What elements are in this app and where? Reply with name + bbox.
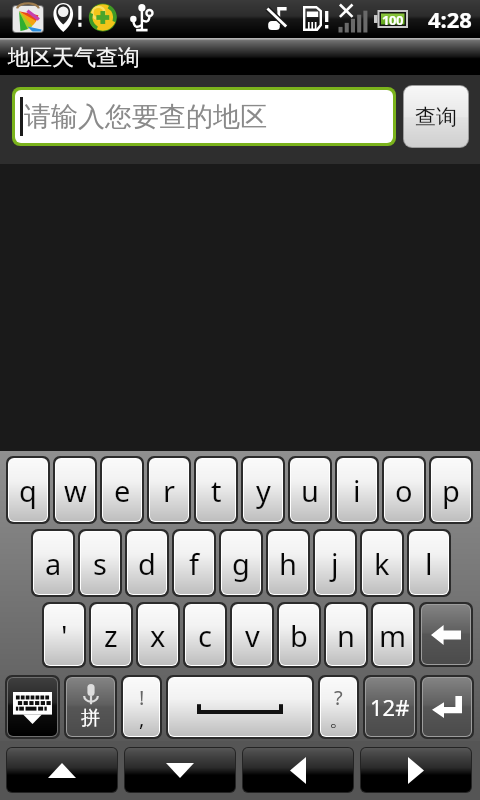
button[interactable]: 查询 (404, 86, 468, 147)
button[interactable]: Down (125, 748, 235, 792)
button[interactable]: g (222, 532, 260, 594)
button[interactable]: z (92, 605, 130, 665)
staticText: b (290, 616, 308, 655)
button[interactable]: j (316, 532, 354, 594)
button[interactable]: ' (45, 605, 83, 665)
button[interactable]: x (139, 605, 177, 665)
staticText: 查询 (415, 104, 457, 130)
staticText: ? (334, 684, 343, 711)
staticText: 100 (382, 11, 403, 28)
staticText: , (139, 705, 145, 732)
staticText: 。 (329, 707, 349, 732)
button[interactable]: Up (7, 748, 117, 792)
staticText: g (232, 544, 250, 583)
staticText: ! (139, 684, 145, 711)
button[interactable]: Left (243, 748, 353, 792)
staticText: i (353, 471, 361, 510)
staticText: h (279, 544, 297, 583)
staticText: k (374, 544, 390, 583)
button[interactable]: d (128, 532, 166, 594)
staticText: 4:28 (428, 4, 472, 34)
staticText: c (198, 616, 212, 655)
staticText: q (19, 471, 37, 510)
button[interactable]: o (385, 459, 423, 521)
button[interactable]: ? (321, 678, 356, 736)
button[interactable]: Backspace (422, 605, 470, 664)
staticText: j (331, 544, 339, 583)
button[interactable]: k (363, 532, 401, 594)
staticText: 拼 (81, 706, 100, 730)
button[interactable]: 12# (366, 678, 414, 736)
staticText: 12# (370, 692, 410, 722)
button[interactable]: t (197, 459, 235, 521)
staticText: a (45, 544, 62, 583)
button[interactable]: u (291, 459, 329, 521)
staticText: w (64, 471, 87, 510)
button[interactable]: n (327, 605, 365, 665)
button[interactable]: l (410, 532, 448, 594)
button[interactable]: b (280, 605, 318, 665)
button[interactable]: f (175, 532, 213, 594)
staticText: 地区天气查询 (8, 44, 140, 72)
staticText: s (93, 544, 107, 583)
button[interactable]: 拼 (67, 678, 114, 736)
button[interactable]: c (186, 605, 224, 665)
staticText: z (104, 616, 118, 655)
staticText: d (138, 544, 156, 583)
button[interactable]: Enter (423, 678, 471, 736)
button[interactable]: h (269, 532, 307, 594)
staticText: 请输入您要查的地区 (24, 100, 267, 134)
button[interactable]: v (233, 605, 271, 665)
staticText: f (189, 544, 199, 583)
button[interactable]: m (374, 605, 412, 665)
staticText: e (114, 471, 131, 510)
button[interactable]: i (338, 459, 376, 521)
staticText: t (211, 471, 222, 510)
staticText: u (301, 471, 319, 510)
staticText: m (379, 616, 407, 655)
staticText: r (163, 471, 175, 510)
button[interactable]: Space (169, 678, 311, 736)
button[interactable]: e (103, 459, 141, 521)
button[interactable]: Hide keyboard (8, 678, 57, 736)
staticText: v (245, 616, 260, 655)
staticText: l (425, 544, 433, 583)
button[interactable]: y (244, 459, 282, 521)
staticText: x (150, 616, 166, 655)
button[interactable]: r (150, 459, 188, 521)
staticText: o (395, 471, 413, 510)
button[interactable]: w (56, 459, 94, 521)
staticText: y (256, 471, 271, 510)
button[interactable]: a (34, 532, 72, 594)
staticText: p (442, 471, 460, 510)
staticText: n (337, 616, 355, 655)
button[interactable]: Right (361, 748, 471, 792)
button[interactable]: ! (124, 678, 159, 736)
staticText: ' (61, 616, 68, 655)
button[interactable]: q (9, 459, 47, 521)
button[interactable]: 请输入您要查的地区 (15, 90, 393, 143)
button[interactable]: s (81, 532, 119, 594)
button[interactable]: p (432, 459, 470, 521)
